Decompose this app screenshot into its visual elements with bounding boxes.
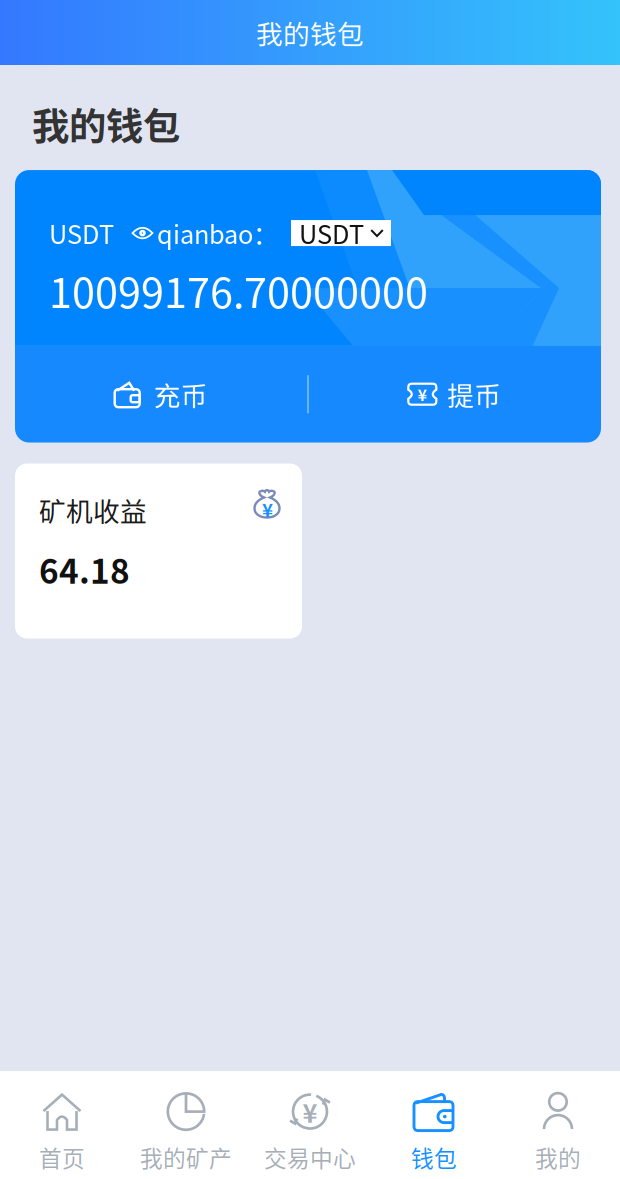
button[interactable]: ¥ xyxy=(248,1064,372,1179)
button[interactable]: 我的矿产 xyxy=(124,1064,248,1179)
button[interactable]: 首页 xyxy=(0,1064,124,1179)
staticText: 矿机收益 xyxy=(39,490,147,529)
staticText: 充币 xyxy=(154,375,208,413)
button[interactable]: 我的 xyxy=(496,1064,620,1179)
staticText: 64.18 xyxy=(39,545,130,593)
staticText: ¥ xyxy=(302,1093,317,1130)
staticText: ¥ xyxy=(262,495,273,522)
staticText: 我的 xyxy=(535,1141,581,1173)
staticText: 我的钱包 xyxy=(32,97,180,151)
staticText: USDT xyxy=(49,215,114,251)
staticText: qianbao： xyxy=(157,215,278,251)
staticText: USDT xyxy=(299,215,364,251)
staticText: 我的钱包 xyxy=(256,13,364,52)
staticText: 首页 xyxy=(39,1141,85,1173)
button[interactable]: 钱包 xyxy=(372,1064,496,1179)
staticText: 钱包 xyxy=(411,1141,457,1173)
staticText: 提币 xyxy=(447,375,501,413)
staticText: 10099176.70000000 xyxy=(49,260,428,320)
staticText: 我的矿产 xyxy=(140,1141,232,1173)
button[interactable]: ¥ xyxy=(309,346,601,442)
button[interactable]: 充币 xyxy=(15,346,307,442)
staticText: 交易中心 xyxy=(264,1141,356,1173)
staticText: ¥ xyxy=(418,383,427,406)
